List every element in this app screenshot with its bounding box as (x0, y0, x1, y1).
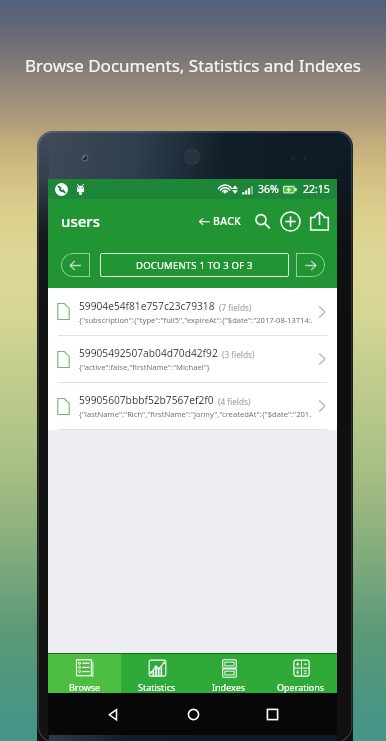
button[interactable]: Recents (257, 699, 287, 729)
button[interactable]: Share (307, 209, 331, 233)
button[interactable]: Add (278, 209, 302, 233)
button[interactable]: Browse (48, 654, 121, 693)
button[interactable]: DOCUMENTS 1 TO 3 OF 3 (100, 253, 289, 277)
button[interactable]: 59904e54f81e757c23c79318 (48, 288, 337, 335)
staticText: 22:15 (303, 182, 330, 196)
staticText: (3 fields) (222, 349, 255, 360)
staticText: (7 fields) (219, 302, 252, 313)
staticText: Statistics (138, 681, 176, 693)
button[interactable]: Search (251, 210, 273, 232)
staticText: 59904e54f81e757c23c79318 (79, 299, 215, 313)
staticText: Operations (277, 681, 325, 693)
button[interactable]: BACK (197, 208, 244, 234)
staticText: Indexes (212, 681, 246, 693)
staticText: users (61, 211, 100, 231)
staticText: 59905492507ab04d70d42f92 (79, 346, 218, 360)
staticText: Browse Documents, Statistics and Indexes (0, 54, 386, 77)
staticText: 36% (258, 182, 279, 196)
button[interactable]: Back (98, 699, 128, 729)
staticText: {"lastName":"Rich","firstName":"Jonny","… (79, 409, 312, 419)
staticText: DOCUMENTS 1 TO 3 OF 3 (136, 259, 253, 272)
staticText: (4 fields) (218, 396, 251, 407)
button[interactable]: 59905607bbbf52b7567ef2f0 (48, 383, 337, 429)
button[interactable]: Statistics (121, 654, 193, 693)
staticText: {"active":false,"firstName":"Michael"} (79, 362, 210, 372)
button[interactable]: 59905492507ab04d70d42f92 (48, 336, 337, 382)
staticText: Browse (69, 681, 101, 693)
staticText: {"subscription":{"type":"full5","expireA… (79, 315, 312, 325)
button[interactable]: Previous page (61, 253, 90, 277)
button[interactable]: Operations (265, 654, 337, 693)
staticText: BACK (213, 214, 242, 228)
button[interactable]: Home (178, 699, 208, 729)
staticText: 59905607bbbf52b7567ef2f0 (79, 393, 214, 407)
button[interactable]: Indexes (193, 654, 265, 693)
button[interactable]: Next page (296, 253, 325, 277)
